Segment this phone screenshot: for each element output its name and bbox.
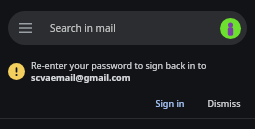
button[interactable]: Dismiss bbox=[201, 94, 247, 112]
button[interactable]: Account bbox=[215, 13, 245, 43]
button[interactable]: Open navigation drawer bbox=[8, 11, 247, 45]
staticText: Dismiss bbox=[207, 97, 241, 109]
button[interactable]: Open navigation drawer bbox=[8, 11, 42, 45]
staticText: scvaemail@gmail.com bbox=[31, 71, 131, 83]
button[interactable]: Sign in bbox=[149, 94, 191, 112]
staticText: Search in mail bbox=[50, 21, 215, 35]
staticText: Re-enter your password to sign back in t… bbox=[31, 59, 207, 71]
staticText: Sign in bbox=[155, 97, 185, 109]
